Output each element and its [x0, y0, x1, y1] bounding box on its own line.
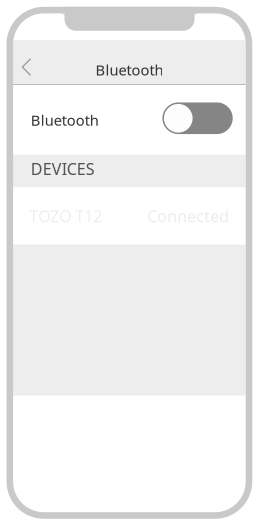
staticText: TOZO T12	[29, 205, 102, 227]
button[interactable]: TOZO T12	[13, 187, 246, 244]
button[interactable]: Bluetooth	[162, 104, 233, 136]
staticText: Bluetooth	[31, 110, 99, 130]
staticText: Bluetooth	[95, 60, 163, 80]
button[interactable]: Back	[13, 40, 53, 84]
staticText: Connected	[147, 205, 229, 227]
staticText: DEVICES	[31, 158, 95, 179]
